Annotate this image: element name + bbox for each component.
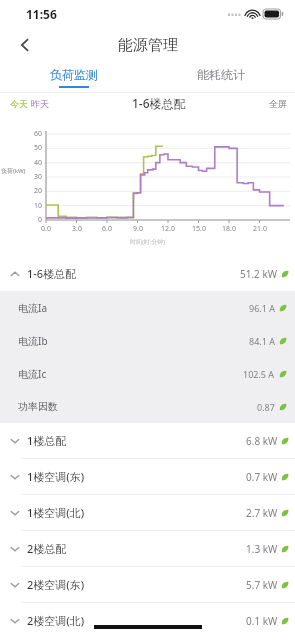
staticText: 0 <box>24 215 42 225</box>
staticText: 0.87 <box>257 401 275 413</box>
button[interactable]: Back <box>8 28 42 62</box>
staticText: 51.2 kW <box>240 267 278 281</box>
button[interactable]: 能耗统计 <box>147 62 295 92</box>
button[interactable]: 2楼空调(北) <box>0 603 295 638</box>
button[interactable]: 电流Ic <box>0 357 295 390</box>
staticText: 功率因数 <box>18 400 58 413</box>
staticText: 96.1 A <box>249 302 275 314</box>
staticText: 50 <box>24 143 42 153</box>
staticText: 0.7 kW <box>246 470 278 484</box>
staticText: 昨天 <box>31 98 49 109</box>
staticText: 20 <box>24 186 42 196</box>
button[interactable]: 全屏 <box>269 98 287 109</box>
staticText: 电流Ia <box>18 301 47 315</box>
staticText: 电流Ic <box>18 367 47 381</box>
staticText: 能源管理 <box>118 36 178 55</box>
staticText: 9.0 <box>129 224 147 234</box>
button[interactable]: 2楼总配 <box>0 531 295 566</box>
staticText: 时间(时:分钟) <box>0 238 295 246</box>
staticText: 负荷监测 <box>50 67 98 82</box>
staticText: 15.0 <box>190 224 208 234</box>
staticText: 30 <box>24 172 42 182</box>
staticText: 0.1 kW <box>246 614 278 628</box>
staticText: 今天 <box>10 98 28 109</box>
button[interactable]: 1楼空调(北) <box>0 495 295 530</box>
staticText: 5.7 kW <box>246 578 278 592</box>
button[interactable]: 电流Ib <box>0 324 295 357</box>
staticText: 2.7 kW <box>246 506 278 520</box>
button[interactable]: 1楼空调(东) <box>0 459 295 494</box>
staticText: 0.0 <box>37 224 55 234</box>
staticText: 2楼总配 <box>27 541 67 556</box>
staticText: 能耗统计 <box>197 67 245 82</box>
staticText: 负荷(kW) <box>1 167 26 175</box>
staticText: 1-6楼总配 <box>132 95 186 111</box>
staticText: 84.1 A <box>249 335 275 347</box>
staticText: 1楼空调(北) <box>27 505 85 520</box>
staticText: 1楼总配 <box>27 433 67 448</box>
staticText: 1楼空调(东) <box>27 469 85 484</box>
staticText: 12.0 <box>159 224 177 234</box>
staticText: 2楼空调(东) <box>27 577 85 592</box>
button[interactable]: 电流Ia <box>0 291 295 324</box>
staticText: 60 <box>24 129 42 139</box>
staticText: 40 <box>24 158 42 168</box>
button[interactable]: 今天 <box>10 98 49 109</box>
staticText: 21.0 <box>251 224 269 234</box>
staticText: 电流Ib <box>18 334 48 348</box>
button[interactable]: 1-6楼总配 <box>0 256 295 291</box>
staticText: 10 <box>24 201 42 211</box>
staticText: 3.0 <box>68 224 86 234</box>
button[interactable]: 负荷监测 <box>0 62 147 92</box>
staticText: 1.3 kW <box>246 542 278 556</box>
staticText: 6.8 kW <box>246 434 278 448</box>
staticText: 18.0 <box>220 224 238 234</box>
staticText: 6.0 <box>98 224 116 234</box>
staticText: 2楼空调(北) <box>27 613 85 628</box>
staticText: 1-6楼总配 <box>27 266 77 281</box>
staticText: 11:56 <box>26 6 57 22</box>
button[interactable]: 2楼空调(东) <box>0 567 295 602</box>
staticText: 102.5 A <box>243 368 275 380</box>
button[interactable]: 功率因数 <box>0 390 295 423</box>
button[interactable]: 1楼总配 <box>0 423 295 458</box>
